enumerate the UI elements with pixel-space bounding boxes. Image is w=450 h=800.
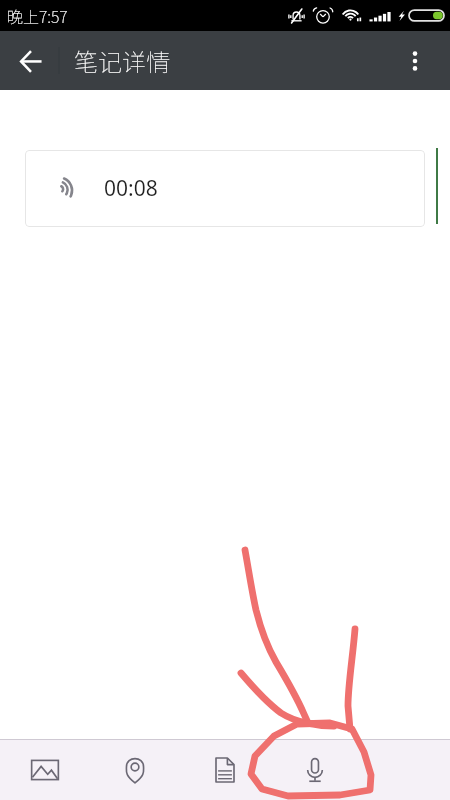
staticText: 笔记详情 (74, 43, 170, 78)
button[interactable]: Add location (90, 740, 180, 800)
button[interactable]: Back (7, 37, 55, 85)
button[interactable]: Record voice (270, 740, 360, 800)
button[interactable]: 00:08 (25, 150, 425, 227)
staticText: 晚上7:57 (7, 4, 68, 27)
button[interactable]: Add note (180, 740, 270, 800)
staticText: 00:08 (104, 174, 158, 203)
button[interactable]: More options (391, 37, 439, 85)
button[interactable]: Add image (0, 740, 90, 800)
